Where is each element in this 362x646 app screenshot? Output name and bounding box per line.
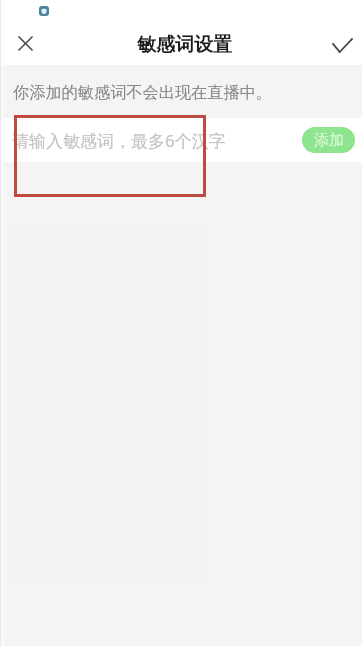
staticText: 你添加的敏感词不会出现在直播中。 — [13, 82, 272, 102]
button[interactable]: Confirm — [312, 26, 362, 65]
staticText: 请输入敏感词，最多6个汉字 — [12, 129, 226, 152]
staticText: 添加 — [314, 131, 344, 150]
button[interactable]: 添加 — [302, 127, 355, 153]
staticText: 敏感词设置 — [137, 33, 232, 57]
button[interactable]: Close — [0, 26, 50, 65]
